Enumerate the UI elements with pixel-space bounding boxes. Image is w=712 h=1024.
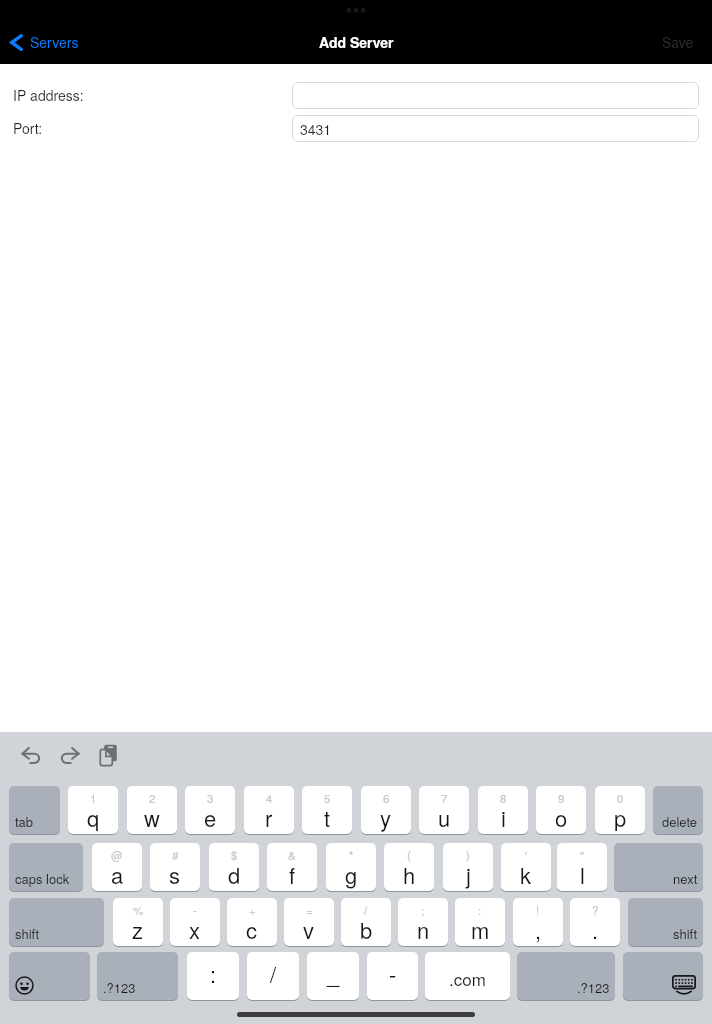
staticText: m	[471, 914, 490, 946]
button[interactable]: ;	[398, 898, 448, 946]
button[interactable]: _	[307, 952, 359, 1000]
staticText: shift	[15, 924, 40, 943]
staticText: .com	[449, 966, 486, 990]
staticText: .?123	[577, 978, 610, 997]
button[interactable]: !	[513, 898, 563, 946]
button[interactable]: 1	[68, 786, 118, 834]
button[interactable]: shift	[9, 898, 104, 946]
button[interactable]: Save	[646, 25, 712, 59]
staticText: &	[288, 847, 296, 863]
staticText: $	[231, 847, 238, 863]
staticText: o	[555, 802, 568, 834]
button[interactable]: next	[614, 843, 703, 891]
button[interactable]: =	[284, 898, 334, 946]
staticText: z	[132, 914, 144, 946]
staticText: #	[172, 847, 179, 863]
staticText: Add Server	[319, 32, 394, 52]
button[interactable]: '	[501, 843, 551, 891]
button[interactable]: caps lock	[9, 843, 83, 891]
staticText: Servers	[30, 32, 79, 52]
staticText: delete	[662, 812, 698, 831]
staticText: 6	[383, 790, 390, 806]
button[interactable]: +	[227, 898, 277, 946]
staticText: q	[87, 802, 100, 834]
staticText: 2	[149, 790, 156, 806]
staticText: =	[306, 902, 313, 918]
staticText: l	[580, 859, 585, 891]
button[interactable]: /	[341, 898, 391, 946]
staticText: -	[389, 958, 397, 990]
button[interactable]: :	[455, 898, 505, 946]
button[interactable]: Servers	[0, 25, 93, 59]
button[interactable]: .com	[425, 952, 510, 1000]
staticText: .?123	[103, 978, 136, 997]
button[interactable]: Paste	[91, 737, 127, 773]
staticText: e	[204, 802, 217, 834]
button[interactable]: delete	[653, 786, 703, 834]
button[interactable]: -	[367, 952, 418, 1000]
button[interactable]: tab	[9, 786, 60, 834]
button[interactable]: $	[209, 843, 259, 891]
button[interactable]: 3	[185, 786, 235, 834]
staticText: t	[324, 802, 331, 834]
button[interactable]: ?	[570, 898, 620, 946]
staticText: IP address:	[13, 85, 84, 105]
staticText: 3	[207, 790, 214, 806]
staticText: 8	[500, 790, 507, 806]
button[interactable]: 2	[127, 786, 177, 834]
staticText: +	[249, 902, 256, 918]
staticText: i	[501, 802, 506, 834]
staticText: c	[246, 914, 258, 946]
button[interactable]: .?123	[97, 952, 178, 1000]
staticText: _	[327, 958, 340, 990]
staticText: b	[360, 914, 373, 946]
button[interactable]: "	[557, 843, 607, 891]
button[interactable]: 7	[419, 786, 469, 834]
button[interactable]: 8	[478, 786, 528, 834]
staticText: 3431	[300, 119, 332, 139]
button[interactable]: Redo	[52, 738, 88, 774]
button[interactable]: 9	[536, 786, 586, 834]
staticText: /	[270, 958, 277, 990]
staticText: d	[228, 859, 241, 891]
button[interactable]: .?123	[517, 952, 615, 1000]
button[interactable]: #	[150, 843, 200, 891]
button[interactable]: 3431	[292, 115, 699, 142]
staticText: 9	[558, 790, 565, 806]
staticText: :	[210, 958, 217, 990]
button[interactable]: Undo	[13, 738, 49, 774]
staticText: w	[144, 802, 160, 834]
button[interactable]: :	[187, 952, 239, 1000]
button[interactable]: &	[267, 843, 317, 891]
staticText: y	[380, 802, 392, 834]
button[interactable]: Emoji	[9, 952, 90, 1000]
button[interactable]: *	[326, 843, 376, 891]
button[interactable]: @	[92, 843, 142, 891]
button[interactable]: shift	[628, 898, 703, 946]
staticText: ;	[421, 902, 425, 918]
staticText: j	[466, 859, 471, 891]
staticText: Port:	[13, 118, 43, 138]
staticText: "	[580, 847, 585, 863]
staticText: g	[345, 859, 358, 891]
staticText: /	[364, 902, 368, 918]
staticText: 0	[617, 790, 624, 806]
button[interactable]: )	[443, 843, 493, 891]
button[interactable]: /	[247, 952, 299, 1000]
staticText: Save	[662, 32, 694, 52]
staticText: h	[403, 859, 416, 891]
staticText: next	[673, 869, 698, 888]
staticText: ?	[592, 902, 599, 918]
button[interactable]	[292, 82, 699, 109]
button[interactable]: 0	[595, 786, 645, 834]
staticText: *	[349, 847, 354, 863]
button[interactable]: 4	[244, 786, 294, 834]
button[interactable]: (	[384, 843, 434, 891]
staticText: 7	[441, 790, 448, 806]
button[interactable]: %	[113, 898, 163, 946]
button[interactable]: -	[170, 898, 220, 946]
button[interactable]: 5	[302, 786, 352, 834]
button[interactable]: 6	[361, 786, 411, 834]
staticText: s	[169, 859, 181, 891]
button[interactable]: Hide keyboard	[623, 952, 703, 1000]
